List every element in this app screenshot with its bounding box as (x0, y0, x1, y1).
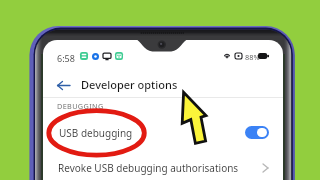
staticText: 88% (245, 52, 260, 62)
button[interactable]: Back (54, 76, 72, 94)
staticText: 6:58 (57, 52, 75, 64)
staticText: Revoke USB debugging authorisations (58, 161, 239, 175)
staticText: Developer options (81, 77, 178, 92)
button[interactable]: Revoke USB debugging authorisations (43, 157, 283, 179)
staticText: DEBUGGING (57, 101, 104, 111)
staticText: USB debugging (59, 126, 133, 140)
button[interactable]: USB debugging (43, 120, 283, 145)
